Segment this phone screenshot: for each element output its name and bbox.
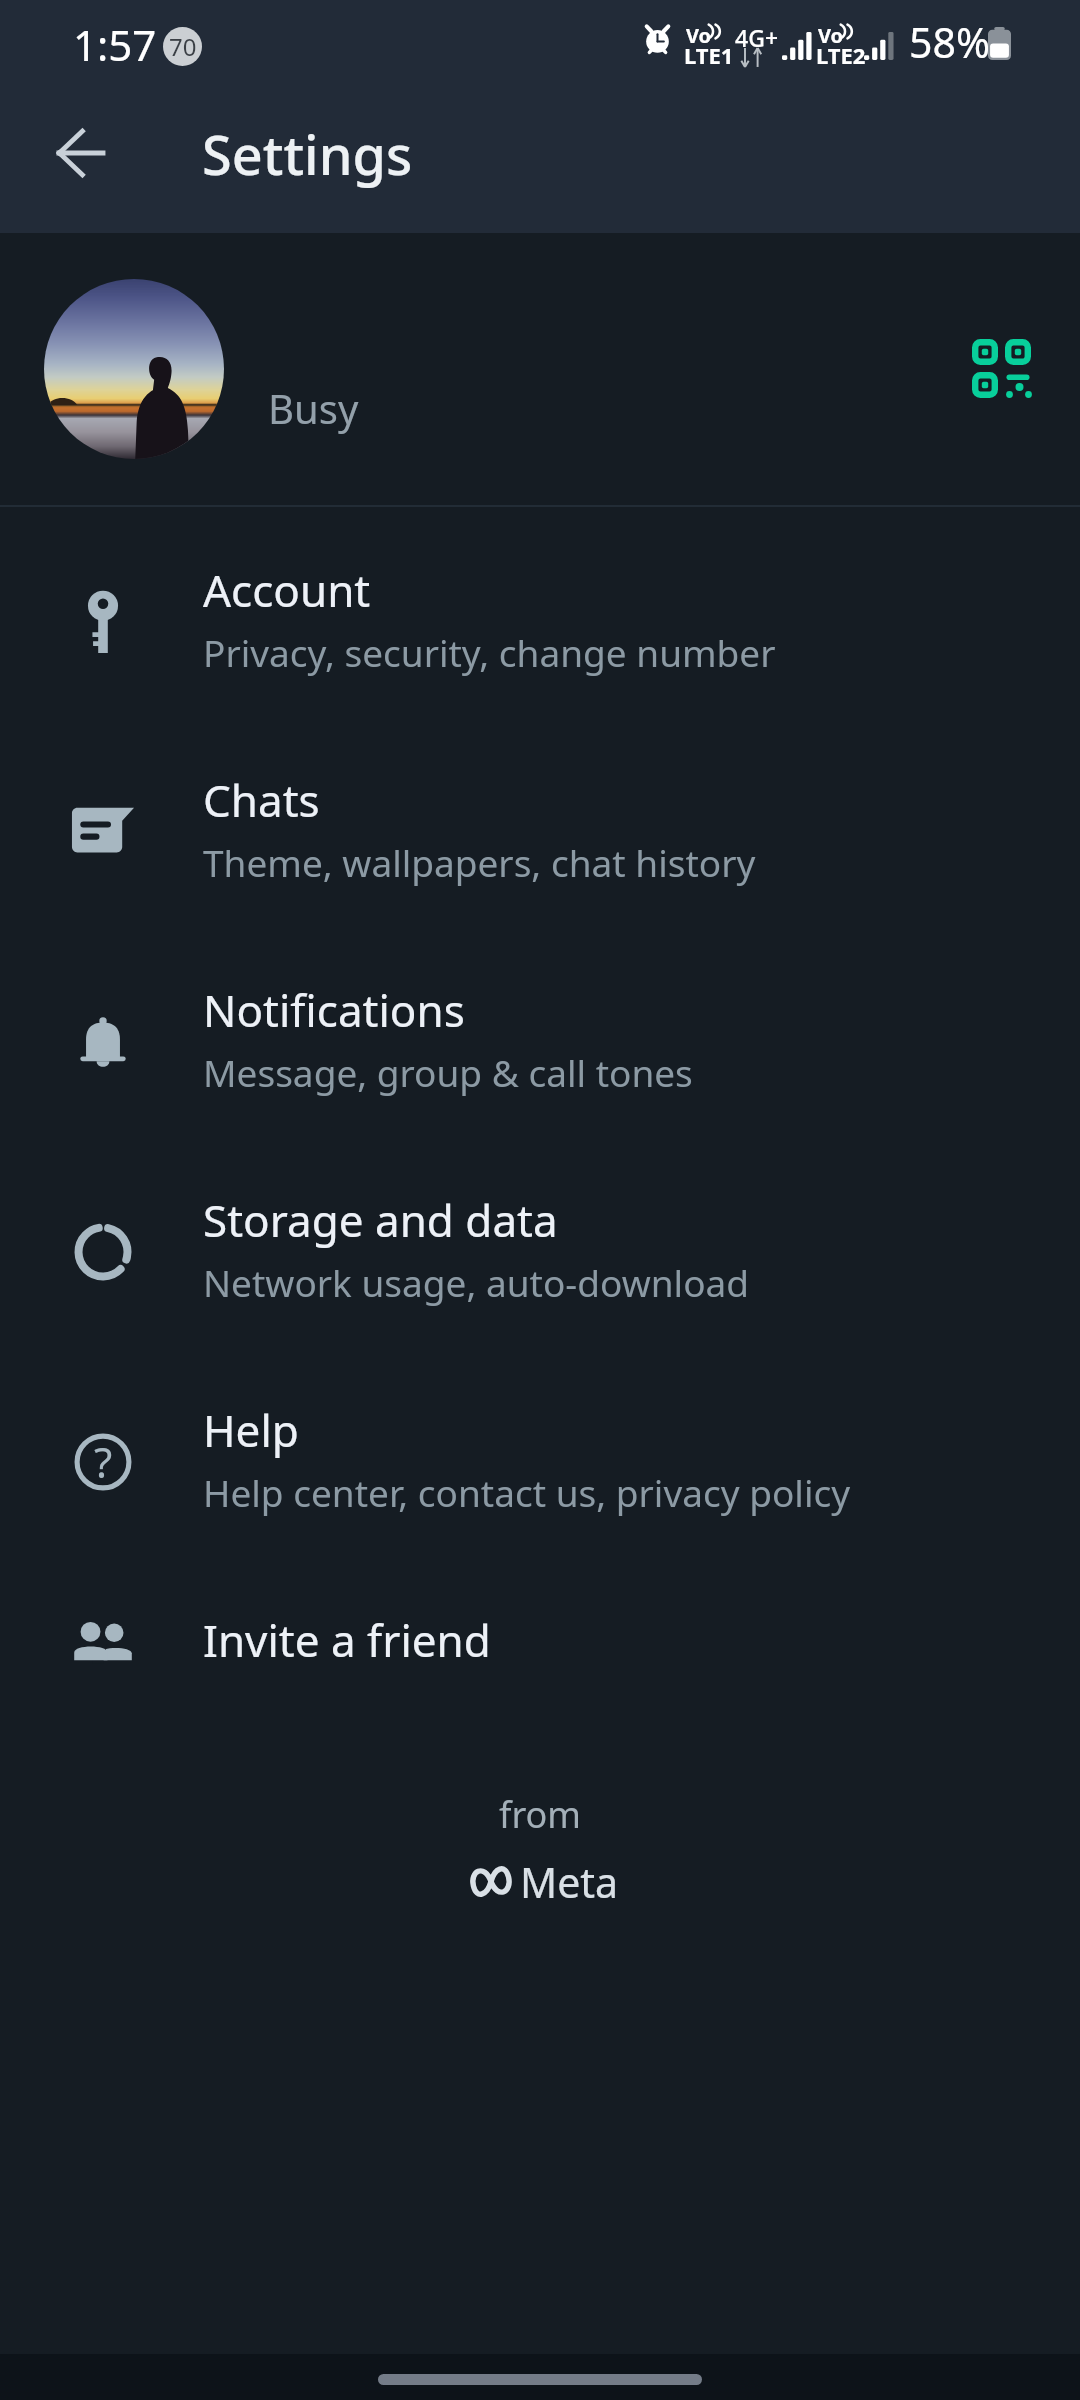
staticText: Help center, contact us, privacy policy (203, 1467, 851, 1517)
staticText: Busy (268, 381, 359, 435)
button[interactable]: Busy (0, 233, 1080, 505)
button[interactable]: Account (0, 516, 1080, 726)
button[interactable]: Notifications (0, 936, 1080, 1146)
button[interactable]: Back (22, 95, 138, 211)
staticText: from (0, 1790, 1080, 1839)
staticText: Theme, wallpapers, chat history (203, 837, 756, 887)
staticText: Chats (203, 770, 320, 830)
staticText: Account (203, 560, 371, 620)
button[interactable]: Chats (0, 726, 1080, 936)
staticText: Settings (202, 117, 413, 191)
staticText: LTE2 (816, 40, 866, 70)
staticText: Vo (818, 22, 844, 49)
staticText: Notifications (203, 980, 465, 1040)
staticText: Privacy, security, change number (203, 627, 776, 677)
staticText: Storage and data (203, 1190, 558, 1250)
staticText: Help (203, 1400, 299, 1460)
staticText: 70 (169, 30, 197, 63)
button[interactable]: QR code (954, 321, 1050, 417)
staticText: Vo (686, 22, 712, 49)
staticText: 1:57 (73, 16, 157, 73)
button[interactable]: Storage and data (0, 1146, 1080, 1356)
staticText: Message, group & call tones (203, 1047, 693, 1097)
button[interactable]: ? (0, 1356, 1080, 1566)
staticText: Invite a friend (203, 1610, 491, 1670)
staticText: LTE1 (684, 40, 734, 70)
staticText: ? (94, 1433, 113, 1490)
staticText: Network usage, auto-download (203, 1257, 750, 1307)
staticText: Meta (520, 1854, 619, 1910)
staticText: 4G+ (735, 22, 779, 53)
button[interactable]: Invite a friend (0, 1566, 1080, 1776)
staticText: 58% (909, 14, 990, 70)
